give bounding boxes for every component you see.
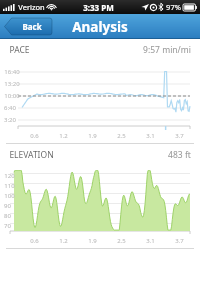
staticText: 2.5 — [117, 237, 126, 245]
staticText: 80 — [4, 212, 11, 220]
staticText: 483 ft — [168, 149, 191, 161]
staticText: 3.7 — [175, 237, 184, 245]
staticText: Back — [22, 21, 42, 32]
staticText: 120 — [4, 172, 15, 180]
staticText: 3.7 — [175, 132, 184, 140]
staticText: 1.9 — [88, 237, 97, 245]
staticText: 16:40 — [4, 68, 20, 76]
staticText: 110 — [4, 182, 15, 190]
staticText: 10:00 — [4, 92, 20, 100]
staticText: 0.6 — [30, 237, 39, 245]
staticText: Analysis — [72, 18, 128, 36]
staticText: 3.1 — [146, 237, 155, 245]
staticText: 2.5 — [117, 132, 126, 140]
staticText: 0.6 — [30, 132, 39, 140]
staticText: 100 — [4, 192, 15, 200]
staticText: Verizon — [18, 2, 45, 12]
staticText: 3.1 — [146, 132, 155, 140]
staticText: 1.2 — [59, 132, 68, 140]
staticText: ELEVATION — [9, 149, 54, 161]
staticText: 70 — [4, 222, 11, 230]
staticText: 3:33 PM — [83, 2, 114, 13]
staticText: 13:20 — [4, 80, 20, 88]
staticText: 90 — [4, 202, 11, 210]
staticText: 6:40 — [4, 104, 16, 112]
staticText: PACE — [9, 44, 30, 56]
staticText: 9:57 min/mi — [143, 44, 191, 56]
staticText: 97% — [166, 2, 181, 12]
button[interactable]: Back — [4, 18, 52, 35]
staticText: 1.2 — [59, 237, 68, 245]
staticText: 3:20 — [4, 116, 16, 124]
staticText: 1.9 — [88, 132, 97, 140]
